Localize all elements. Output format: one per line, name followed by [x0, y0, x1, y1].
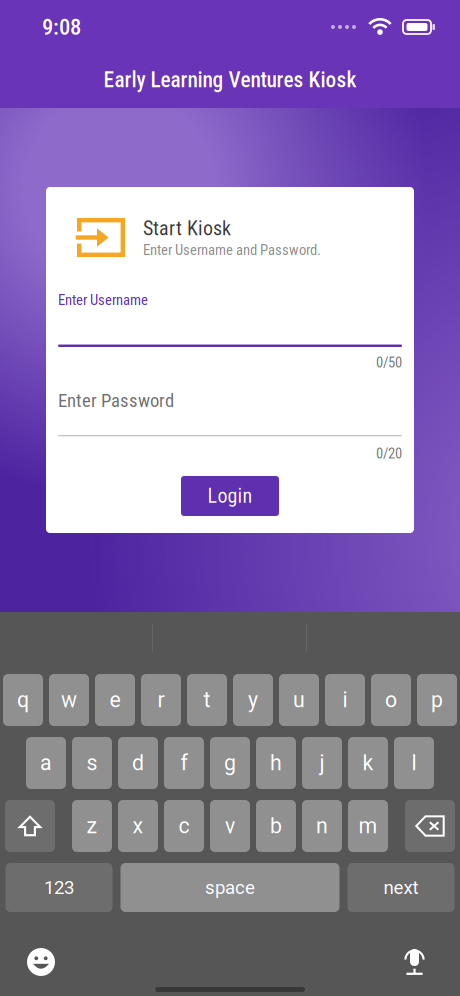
staticText: x — [132, 813, 143, 838]
button[interactable]: t — [187, 674, 227, 726]
button[interactable]: v — [210, 800, 250, 852]
button[interactable]: y — [233, 674, 273, 726]
staticText: Start Kiosk — [143, 217, 231, 240]
staticText: v — [225, 813, 235, 838]
button[interactable]: u — [279, 674, 319, 726]
button[interactable]: j — [302, 737, 342, 789]
staticText: 123 — [44, 877, 74, 898]
staticText: n — [316, 813, 328, 838]
button[interactable]: k — [348, 737, 388, 789]
staticText: Enter Username — [58, 291, 148, 309]
staticText: z — [86, 813, 97, 838]
staticText: c — [178, 813, 189, 838]
button[interactable]: h — [256, 737, 296, 789]
button[interactable]: q — [3, 674, 43, 726]
button[interactable]: b — [256, 800, 296, 852]
staticText: o — [385, 687, 397, 712]
staticText: Early Learning Ventures Kiosk — [103, 67, 356, 92]
button[interactable]: x — [118, 800, 158, 852]
button[interactable]: o — [371, 674, 411, 726]
staticText: h — [270, 750, 282, 775]
staticText: r — [157, 687, 164, 712]
staticText: k — [362, 750, 373, 775]
button[interactable]: Shift — [5, 800, 55, 852]
staticText: l — [411, 750, 416, 775]
staticText: f — [180, 750, 187, 775]
staticText: j — [319, 750, 324, 775]
button[interactable]: c — [164, 800, 204, 852]
button[interactable]: Voice input — [403, 947, 426, 976]
staticText: Enter Username and Password. — [143, 241, 321, 259]
button[interactable]: 123 — [5, 863, 112, 912]
staticText: e — [109, 687, 120, 712]
button[interactable]: e — [95, 674, 135, 726]
staticText: m — [358, 813, 377, 838]
staticText: g — [224, 750, 236, 775]
staticText: p — [431, 687, 443, 712]
staticText: q — [17, 687, 29, 712]
button[interactable]: m — [348, 800, 388, 852]
button[interactable]: next — [347, 863, 454, 912]
staticText: b — [270, 813, 282, 838]
staticText: Login — [207, 484, 252, 508]
button[interactable]: i — [325, 674, 365, 726]
button[interactable]: d — [118, 737, 158, 789]
staticText: 0/20 — [376, 445, 402, 462]
button[interactable]: Delete — [405, 800, 455, 852]
staticText: d — [132, 750, 144, 775]
staticText: a — [40, 750, 52, 775]
button[interactable]: l — [394, 737, 434, 789]
staticText: w — [61, 687, 77, 712]
button[interactable]: g — [210, 737, 250, 789]
button[interactable]: a — [26, 737, 66, 789]
button[interactable]: Emoji — [27, 948, 55, 976]
staticText: s — [86, 750, 97, 775]
button[interactable]: n — [302, 800, 342, 852]
staticText: u — [293, 687, 305, 712]
staticText: 0/50 — [376, 354, 402, 371]
staticText: next — [383, 877, 418, 898]
staticText: 9:08 — [42, 14, 81, 40]
staticText: space — [205, 877, 255, 898]
button[interactable]: w — [49, 674, 89, 726]
button[interactable]: f — [164, 737, 204, 789]
staticText: t — [203, 687, 210, 712]
button[interactable]: z — [72, 800, 112, 852]
staticText: i — [342, 687, 347, 712]
button[interactable]: p — [417, 674, 457, 726]
staticText: y — [248, 687, 258, 712]
button[interactable]: Login — [181, 476, 279, 516]
button[interactable]: space — [120, 863, 339, 912]
button[interactable]: r — [141, 674, 181, 726]
staticText: Enter Password — [58, 390, 174, 411]
button[interactable]: s — [72, 737, 112, 789]
